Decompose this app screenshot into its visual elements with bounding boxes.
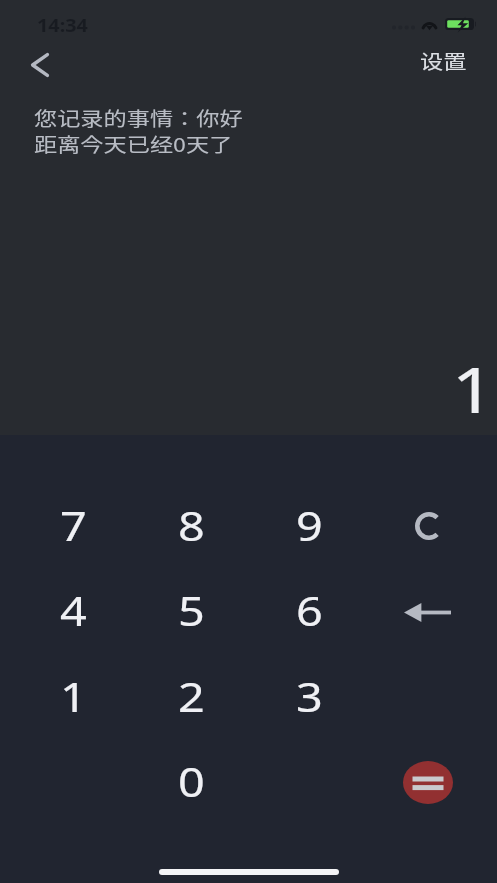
button[interactable]: Clear [370,484,488,568]
staticText: 3 [296,669,323,723]
staticText: 9 [296,498,323,552]
staticText: 4 [60,583,87,637]
staticText: 2 [178,669,205,723]
button[interactable]: 4 [14,568,132,652]
button[interactable]: 6 [250,568,368,652]
staticText: 7 [60,498,87,552]
staticText: 1 [60,669,87,723]
button[interactable]: 1 [14,654,132,738]
staticText: 6 [296,583,323,637]
button[interactable]: Back [18,43,62,87]
button[interactable]: 8 [132,483,250,567]
staticText: 距离今天已经0天了 [34,130,233,158]
button[interactable]: 5 [132,568,250,652]
button[interactable]: 3 [250,654,368,738]
button[interactable]: 设置 [420,41,490,81]
button[interactable]: Equals [369,740,487,824]
staticText: 0 [178,754,205,808]
staticText: 设置 [420,47,468,75]
staticText: 1 [450,347,495,413]
button[interactable]: 0 [132,739,250,823]
button[interactable]: Backspace [368,570,486,654]
button[interactable]: 9 [250,483,368,567]
button[interactable]: 7 [14,483,132,567]
staticText: 您记录的事情：你好 [34,104,244,132]
staticText: 14:34 [37,13,89,38]
staticText: 8 [178,498,205,552]
staticText: 5 [178,583,205,637]
button[interactable]: 2 [132,654,250,738]
